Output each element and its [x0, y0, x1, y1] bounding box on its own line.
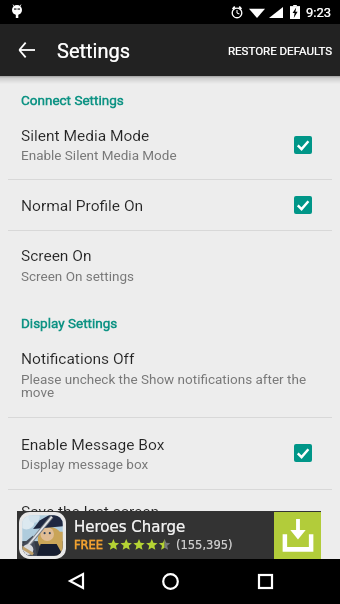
staticText: Enable Silent Media Mode [21, 147, 177, 163]
staticText: 9:23 [306, 5, 332, 20]
button[interactable] [0, 127, 340, 179]
staticText: Display message box [21, 456, 149, 472]
button[interactable]: Checked [294, 196, 312, 214]
staticText: Heroes Charge [74, 518, 186, 535]
staticText: Enable Message Box [21, 436, 165, 454]
button[interactable]: Navigate up [8, 32, 44, 68]
staticText: Save the last screen [21, 503, 160, 521]
staticText: Please uncheck the Show notifications af… [21, 371, 313, 400]
button[interactable] [0, 417, 340, 489]
button[interactable]: Install [274, 512, 321, 559]
button[interactable]: Recent apps [243, 559, 287, 603]
staticText: Normal Profile On [21, 197, 144, 215]
staticText: Notifications Off [21, 350, 135, 368]
staticText: Screen On [21, 247, 92, 265]
button[interactable] [0, 489, 340, 541]
staticText: Silent Media Mode [21, 127, 150, 145]
button[interactable]: Checked [294, 136, 312, 154]
button[interactable]: Back [54, 559, 98, 603]
button[interactable] [0, 230, 340, 299]
staticText: Screen On settings [21, 268, 134, 284]
button[interactable]: RESTORE DEFAULTS [222, 32, 338, 68]
staticText: Display Settings [21, 315, 118, 331]
button[interactable]: Home [148, 559, 192, 603]
button[interactable] [17, 511, 321, 559]
button[interactable]: Checked [294, 444, 312, 462]
button[interactable] [0, 179, 340, 230]
button[interactable] [0, 350, 340, 417]
staticText: FREE [74, 538, 104, 551]
staticText: Settings [57, 39, 131, 62]
staticText: Connect Settings [21, 92, 124, 108]
staticText: (155,395) [176, 538, 233, 551]
staticText: RESTORE DEFAULTS [228, 44, 333, 57]
